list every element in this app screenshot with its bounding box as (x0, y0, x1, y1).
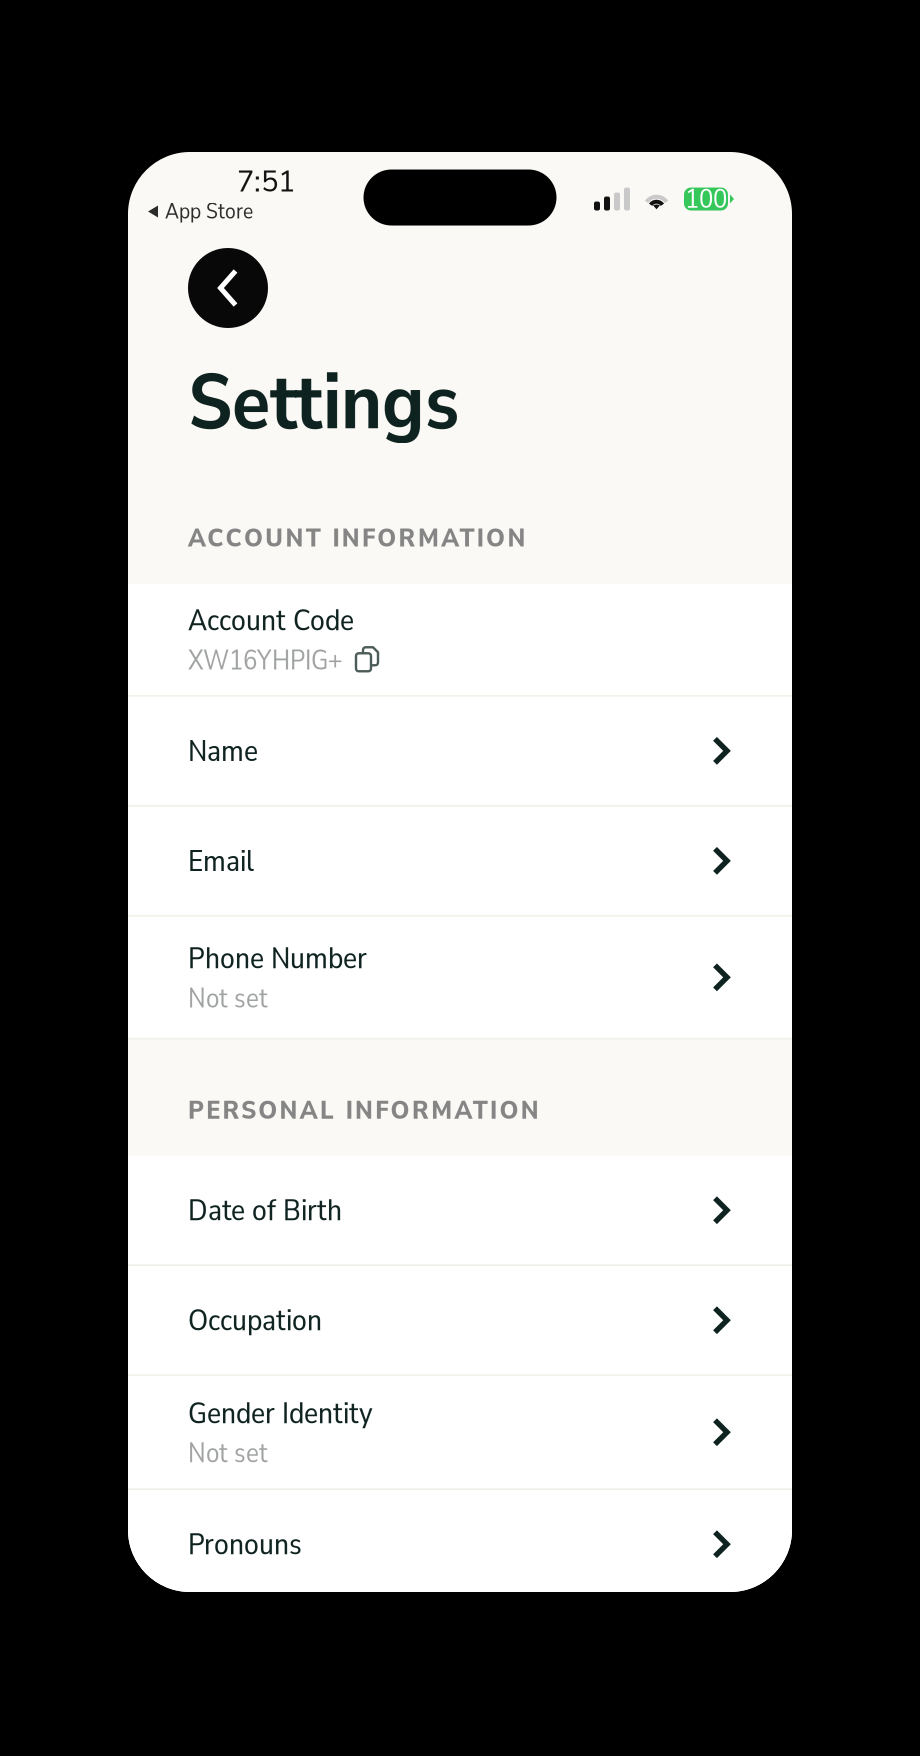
staticText: Pronouns (188, 1523, 302, 1565)
staticText: XW16YHPIG+ (188, 641, 342, 679)
button[interactable]: Date of Birth (128, 1156, 792, 1266)
button[interactable]: Pronouns (128, 1490, 792, 1600)
staticText: Email (188, 840, 254, 882)
staticText: 100 (685, 181, 727, 217)
staticText: Phone Number (188, 937, 367, 979)
staticText: Name (188, 730, 258, 772)
button[interactable]: Occupation (128, 1266, 792, 1376)
button[interactable]: Email (128, 807, 792, 917)
staticText: Gender Identity (188, 1392, 373, 1434)
staticText: App Store (165, 197, 253, 226)
staticText: Occupation (188, 1299, 322, 1341)
staticText: Date of Birth (188, 1189, 342, 1231)
button[interactable]: Gender Identity (128, 1376, 792, 1490)
button[interactable]: Name (128, 697, 792, 807)
button[interactable]: App Store (147, 196, 253, 222)
staticText: PERSONAL INFORMATION (188, 1092, 539, 1128)
staticText: Settings (188, 350, 459, 455)
button[interactable]: Back (188, 248, 268, 328)
staticText: ACCOUNT INFORMATION (188, 519, 525, 556)
staticText: Account Code (188, 599, 354, 641)
staticText: 7:51 (237, 161, 295, 202)
button[interactable]: Phone Number (128, 917, 792, 1040)
button[interactable]: Account Code (128, 584, 792, 697)
staticText: Not set (188, 1434, 268, 1472)
staticText: Not set (188, 979, 268, 1017)
